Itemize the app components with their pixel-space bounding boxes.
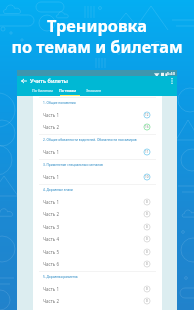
staticText: 0 <box>146 262 148 266</box>
staticText: 10 <box>145 175 149 179</box>
staticText: Экзамен <box>86 88 102 93</box>
button[interactable]: 2. Общие обязанности водителей. Обязанно… <box>33 134 162 146</box>
staticText: 11 <box>145 150 149 154</box>
staticText: Часть 2 <box>43 124 60 130</box>
button[interactable]: 1. Общие положения <box>33 97 162 109</box>
staticText: Часть 1 <box>43 199 60 205</box>
staticText: 12 <box>145 113 149 117</box>
button[interactable]: Часть 1 <box>33 109 162 121</box>
button[interactable]: Ещё <box>166 76 177 86</box>
staticText: Часть 2 <box>43 211 60 217</box>
button[interactable]: 4. Дорожные знаки <box>33 184 162 196</box>
staticText: Учить билеты <box>30 77 69 85</box>
staticText: Часть 1 <box>43 112 60 118</box>
button[interactable]: По билетам <box>29 86 55 96</box>
button[interactable]: По темам <box>55 86 81 96</box>
button[interactable]: Часть 2 <box>33 208 162 220</box>
button[interactable]: 3. Применение специальных сигналов <box>33 159 162 171</box>
staticText: Часть 4 <box>43 236 60 242</box>
staticText: Часть 1 <box>43 286 60 292</box>
staticText: 0 <box>146 212 148 216</box>
button[interactable]: Часть 3 <box>33 221 162 233</box>
staticText: 4. Дорожные знаки <box>43 188 73 192</box>
staticText: 1. Общие положения <box>43 101 76 105</box>
staticText: Часть 3 <box>43 224 60 230</box>
staticText: 2. Общие обязанности водителей. Обязанно… <box>43 138 137 142</box>
staticText: 3. Применение специальных сигналов <box>43 163 103 167</box>
staticText: 0 <box>146 225 148 229</box>
button[interactable]: Часть 1 <box>33 146 162 158</box>
staticText: 16 <box>145 125 149 129</box>
staticText: 0 <box>146 237 148 241</box>
staticText: По темам <box>59 88 77 93</box>
staticText: Тренировка по темам и билетам <box>0 15 194 58</box>
staticText: Часть 1 <box>43 174 60 180</box>
staticText: По билетам <box>32 88 53 93</box>
button[interactable]: Часть 6 <box>33 258 162 270</box>
staticText: 0 <box>146 250 148 254</box>
staticText: Часть 6 <box>43 261 60 267</box>
button[interactable]: 5. Дорожная разметка <box>33 271 162 283</box>
staticText: 0 <box>146 287 148 291</box>
button[interactable]: Назад <box>17 76 30 86</box>
staticText: 0 <box>146 200 148 204</box>
button[interactable]: Часть 5 <box>33 246 162 258</box>
button[interactable]: Часть 1 <box>33 171 162 183</box>
button[interactable]: Часть 4 <box>33 233 162 245</box>
button[interactable]: Экзамен <box>81 86 107 96</box>
staticText: Часть 5 <box>43 249 60 255</box>
button[interactable]: Часть 2 <box>33 121 162 133</box>
staticText: 0 <box>146 299 148 303</box>
button[interactable]: Часть 1 <box>33 196 162 208</box>
staticText: 5. Дорожная разметка <box>43 275 78 279</box>
button[interactable]: Часть 2 <box>33 295 162 307</box>
staticText: Часть 1 <box>43 149 60 155</box>
staticText: 5:40 <box>167 71 175 76</box>
button[interactable]: Часть 1 <box>33 283 162 295</box>
staticText: Часть 2 <box>43 298 60 304</box>
